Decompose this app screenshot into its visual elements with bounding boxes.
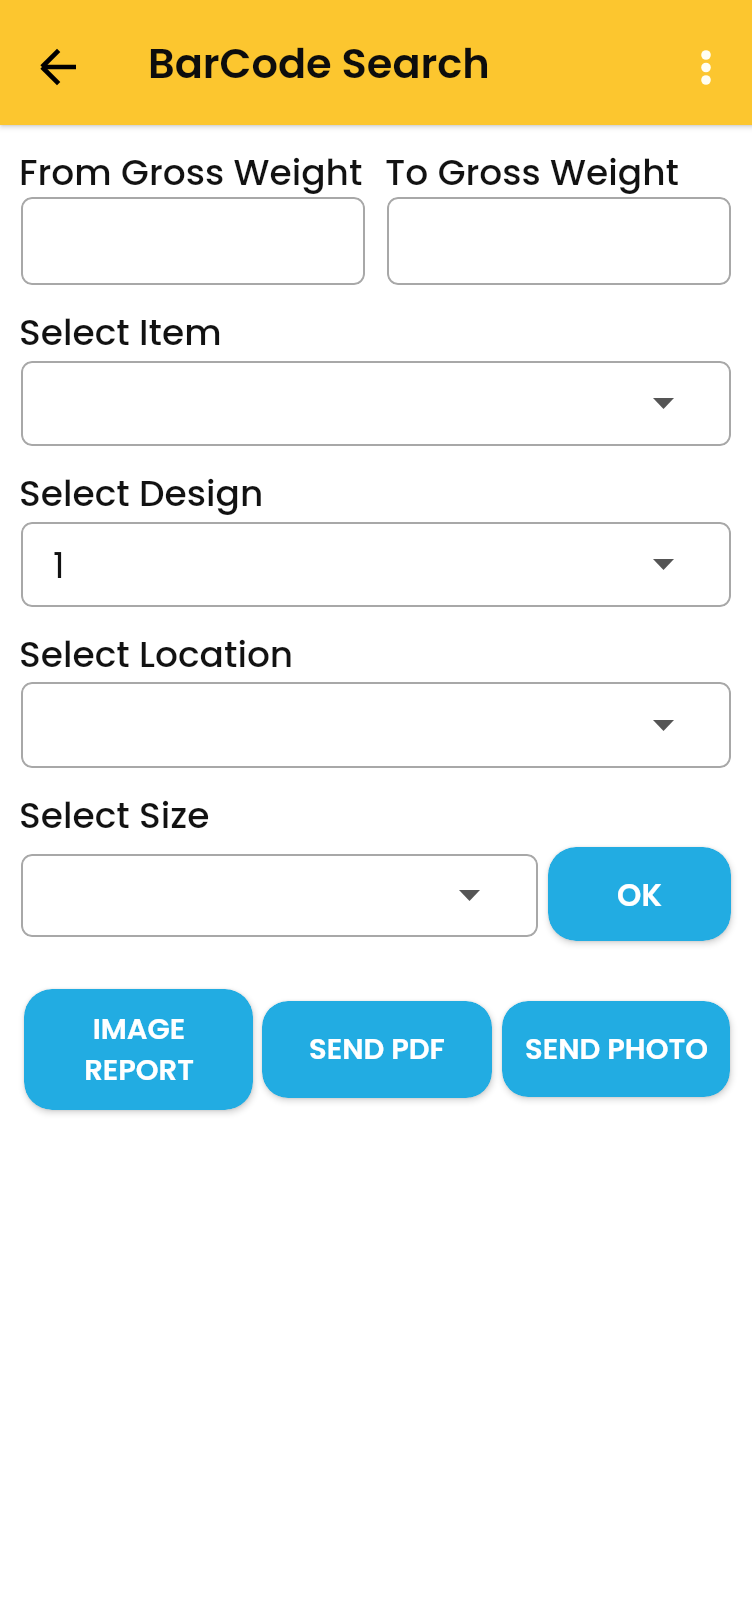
- staticText: OK: [617, 873, 662, 916]
- staticText: From Gross Weight: [19, 147, 363, 197]
- staticText: IMAGE REPORT: [84, 1009, 194, 1090]
- button[interactable]: IMAGE REPORT: [24, 989, 253, 1110]
- staticText: Select Size: [19, 790, 210, 840]
- button[interactable]: More options: [674, 31, 738, 95]
- staticText: BarCode Search: [148, 34, 490, 92]
- staticText: Select Item: [19, 307, 222, 357]
- button[interactable]: From Gross Weight: [21, 197, 365, 285]
- button[interactable]: SEND PHOTO: [502, 1001, 730, 1097]
- staticText: Select Design: [19, 468, 264, 518]
- staticText: To Gross Weight: [385, 147, 679, 197]
- button[interactable]: Select Location: [21, 682, 731, 768]
- staticText: 1: [53, 540, 65, 590]
- staticText: SEND PHOTO: [525, 1029, 708, 1070]
- button[interactable]: Select Design: [21, 522, 731, 607]
- button[interactable]: To Gross Weight: [387, 197, 731, 285]
- button[interactable]: SEND PDF: [262, 1001, 492, 1098]
- button[interactable]: Select Size: [21, 854, 538, 937]
- button[interactable]: OK: [548, 847, 731, 941]
- staticText: Select Location: [19, 629, 294, 679]
- button[interactable]: Navigate back: [17, 17, 101, 101]
- button[interactable]: Select Item: [21, 361, 731, 446]
- staticText: SEND PDF: [309, 1029, 445, 1070]
